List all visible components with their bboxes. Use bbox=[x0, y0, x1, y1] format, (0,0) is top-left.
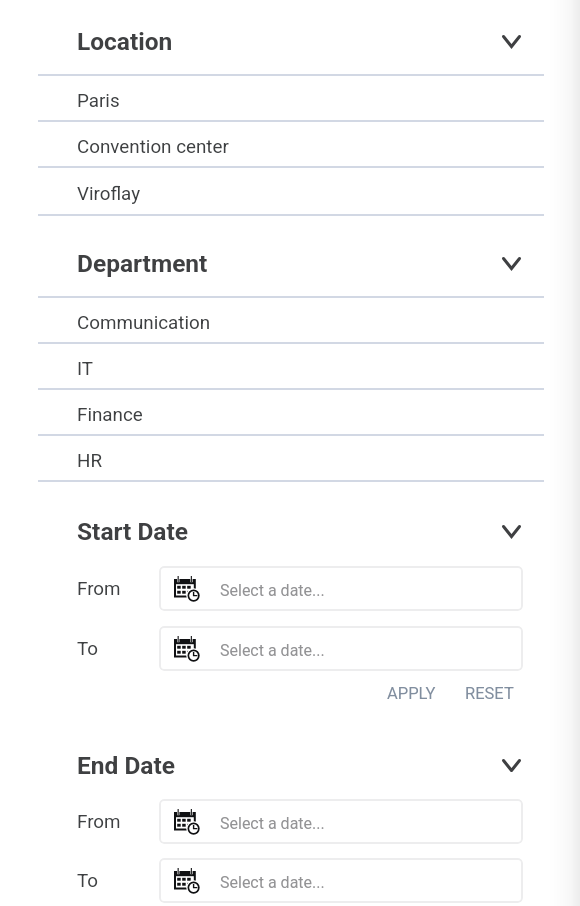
other: Pick a date bbox=[174, 809, 200, 835]
other: Pick a date bbox=[174, 636, 200, 662]
staticText: Select a date... bbox=[220, 873, 325, 892]
button[interactable]: Pick a date bbox=[159, 566, 523, 611]
staticText: Communication bbox=[77, 312, 211, 334]
staticText: Convention center bbox=[77, 136, 229, 158]
button[interactable]: End Date bbox=[0, 737, 580, 793]
button[interactable]: IT bbox=[0, 347, 580, 391]
button[interactable]: Convention center bbox=[0, 125, 580, 169]
staticText: RESET bbox=[465, 684, 514, 703]
staticText: To bbox=[77, 870, 99, 892]
button[interactable]: Finance bbox=[0, 393, 580, 437]
button[interactable]: Collapse section bbox=[492, 22, 530, 60]
button[interactable]: HR bbox=[0, 439, 580, 483]
button[interactable]: Communication bbox=[0, 301, 580, 345]
staticText: Paris bbox=[77, 90, 120, 112]
staticText: Viroflay bbox=[77, 183, 141, 205]
staticText: Select a date... bbox=[220, 641, 325, 660]
staticText: From bbox=[77, 578, 121, 600]
button[interactable]: Paris bbox=[0, 79, 580, 123]
staticText: From bbox=[77, 811, 121, 833]
button[interactable]: Pick a date bbox=[159, 799, 523, 844]
button[interactable]: APPLY bbox=[381, 675, 442, 711]
staticText: Select a date... bbox=[220, 581, 325, 600]
staticText: Start Date bbox=[77, 517, 188, 546]
staticText: Finance bbox=[77, 404, 143, 426]
button[interactable]: Pick a date bbox=[159, 858, 523, 903]
button[interactable]: Viroflay bbox=[0, 172, 580, 216]
button[interactable]: Location bbox=[0, 13, 580, 69]
button[interactable]: Collapse section bbox=[492, 244, 530, 282]
other: Pick a date bbox=[174, 576, 200, 602]
staticText: To bbox=[77, 638, 99, 660]
staticText: End Date bbox=[77, 751, 175, 780]
other: Pick a date bbox=[174, 868, 200, 894]
button[interactable]: RESET bbox=[459, 675, 520, 711]
staticText: Location bbox=[77, 27, 173, 56]
staticText: Select a date... bbox=[220, 814, 325, 833]
button[interactable]: Start Date bbox=[0, 503, 580, 559]
button[interactable]: Collapse section bbox=[492, 746, 530, 784]
button[interactable]: Pick a date bbox=[159, 626, 523, 671]
staticText: Department bbox=[77, 249, 208, 278]
staticText: HR bbox=[77, 450, 102, 472]
staticText: IT bbox=[77, 358, 94, 380]
button[interactable]: Department bbox=[0, 235, 580, 291]
staticText: APPLY bbox=[387, 684, 436, 703]
button[interactable]: Collapse section bbox=[492, 512, 530, 550]
